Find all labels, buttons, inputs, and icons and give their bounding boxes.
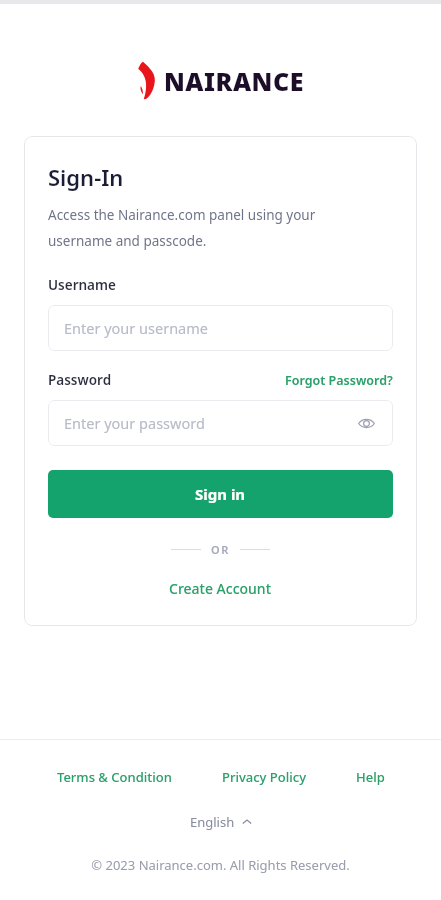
staticText: Privacy Policy	[222, 768, 306, 786]
staticText: Help	[356, 768, 385, 786]
staticText: Password	[48, 371, 112, 389]
staticText: OR	[211, 542, 230, 557]
button[interactable]: Enter your username	[48, 305, 393, 351]
staticText: Enter your password	[64, 413, 205, 433]
button[interactable]: Terms & Condition	[54, 766, 175, 788]
button[interactable]: Create Account	[163, 577, 278, 600]
button[interactable]: English	[184, 810, 258, 834]
staticText: © 2023 Nairance.com. All Rights Reserved…	[0, 856, 441, 874]
button[interactable]: Forgot Password?	[285, 372, 393, 389]
button[interactable]: Show password	[355, 412, 377, 434]
button[interactable]: Enter your password	[48, 400, 393, 446]
button[interactable]: Privacy Policy	[219, 766, 309, 788]
staticText: Access the Nairance.com panel using your…	[48, 206, 316, 250]
button[interactable]: Sign in	[48, 470, 393, 518]
staticText: English	[190, 813, 235, 831]
staticText: NAIRANCE	[164, 64, 304, 98]
staticText: Username	[48, 276, 116, 294]
button[interactable]: Help	[353, 766, 388, 788]
staticText: Forgot Password?	[285, 372, 393, 389]
staticText: Sign in	[195, 484, 246, 504]
staticText: Sign-In	[48, 162, 124, 192]
staticText: Enter your username	[64, 318, 208, 338]
staticText: Terms & Condition	[57, 768, 172, 786]
staticText: Create Account	[169, 579, 272, 598]
